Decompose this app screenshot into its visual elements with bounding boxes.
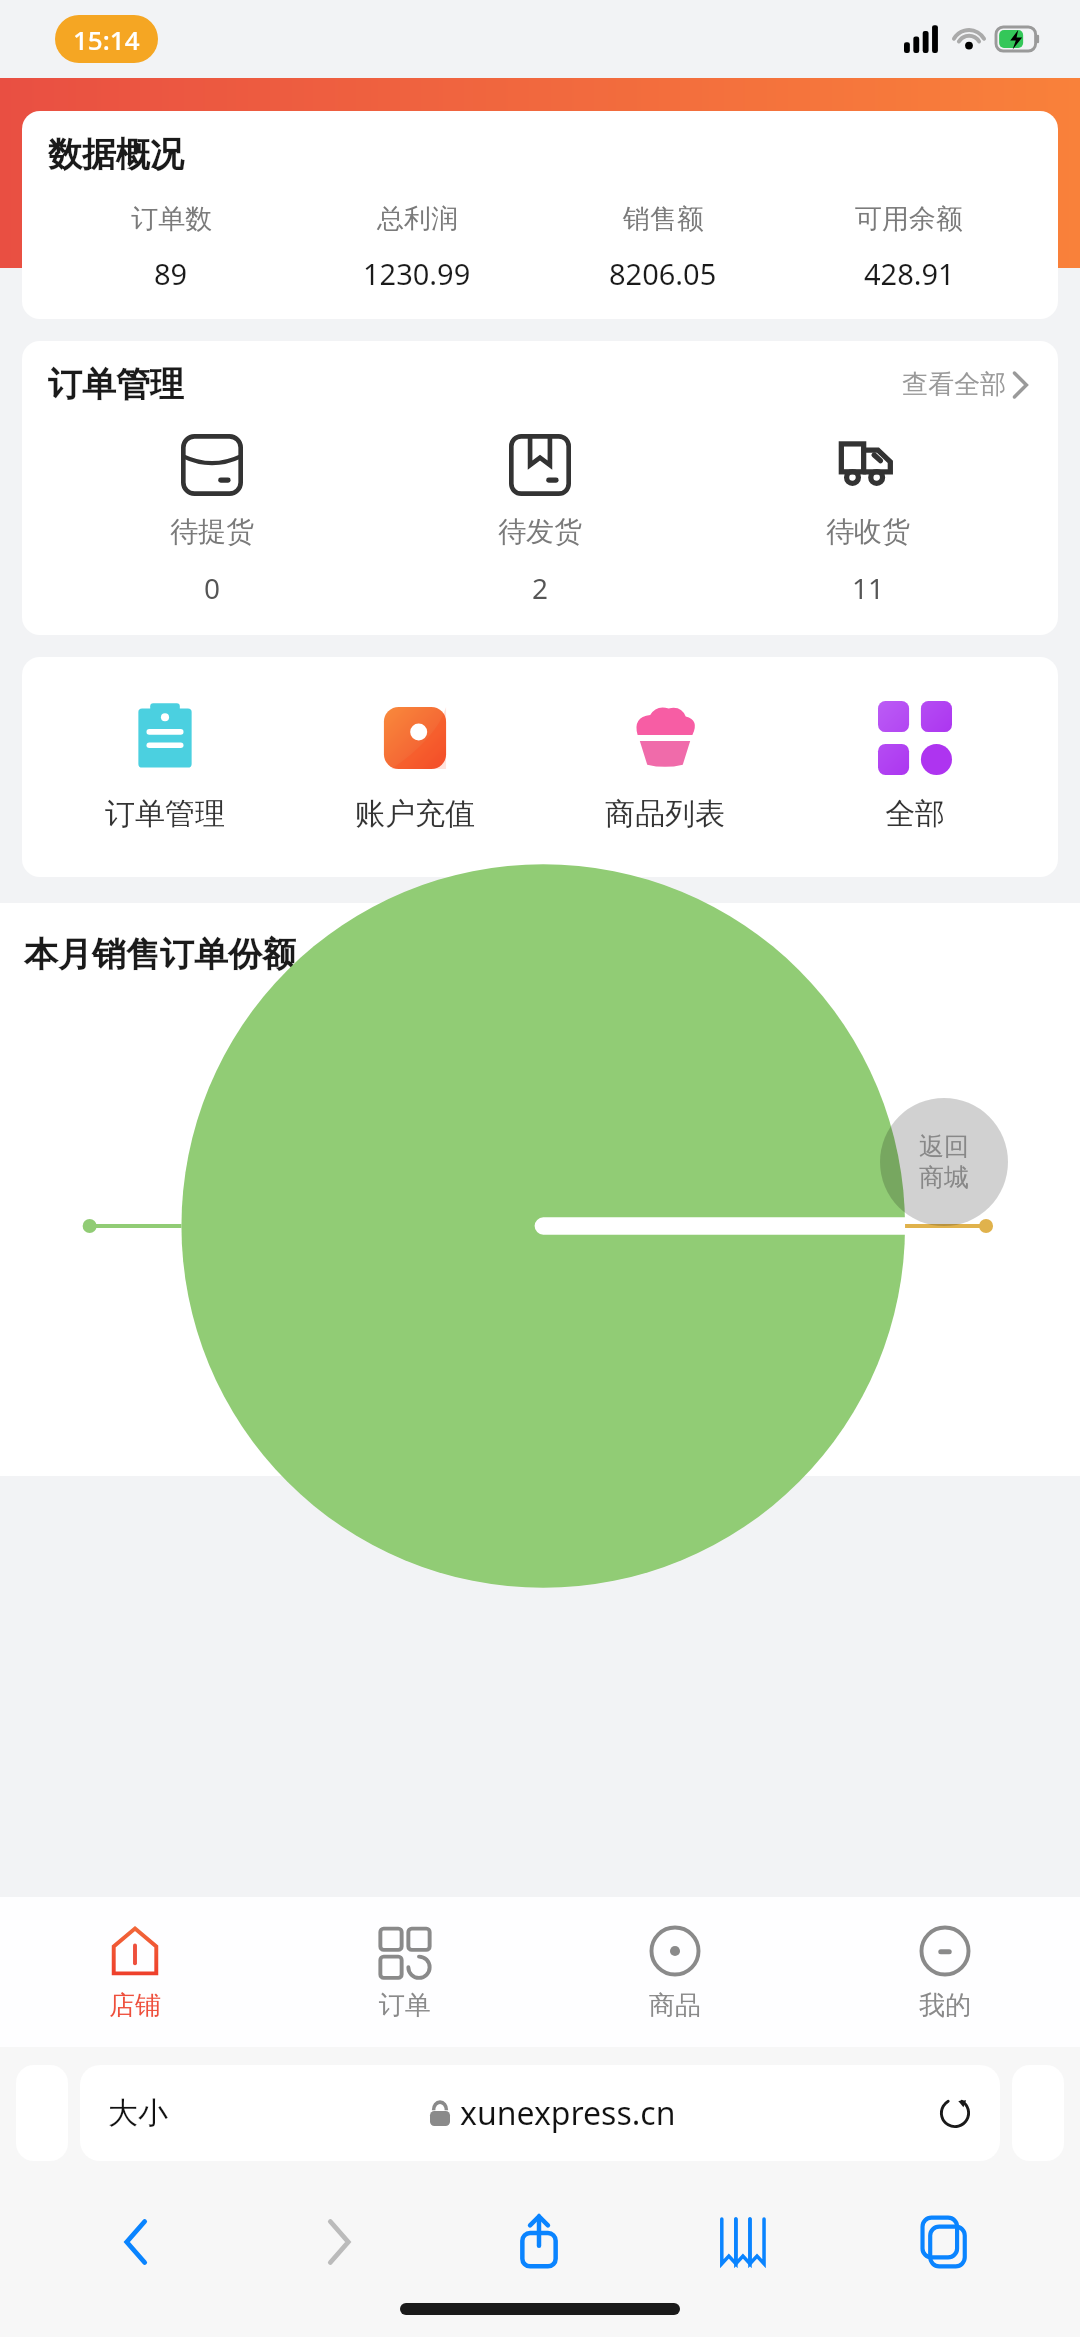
staticText: 2 — [532, 569, 549, 607]
button[interactable]: 订单管理 — [40, 697, 290, 837]
staticText: 待收货 — [826, 514, 910, 549]
staticText: 我的 — [919, 1989, 971, 2022]
staticText: 数据概况 — [48, 133, 184, 176]
staticText: 销售额 — [623, 202, 704, 236]
button[interactable]: 待收货 — [704, 430, 1032, 611]
button[interactable]: 店铺 — [0, 1897, 270, 2047]
button[interactable]: 待提货 — [48, 430, 376, 611]
staticText: 15:14 — [73, 22, 140, 57]
staticText: 订单 — [379, 1989, 431, 2022]
button[interactable]: Forward — [237, 2197, 438, 2287]
button[interactable]: 商品 — [540, 1897, 810, 2047]
button[interactable]: Tabs — [842, 2197, 1044, 2287]
other: Reload — [938, 2096, 972, 2130]
button[interactable]: 返回 — [880, 1098, 1008, 1226]
staticText: xunexpress.cn — [460, 2091, 676, 2135]
staticText: 全部 — [885, 795, 945, 833]
button[interactable]: 查看全部 — [898, 364, 1032, 405]
staticText: 查看全部 — [902, 368, 1006, 401]
staticText: 订单管理 — [48, 363, 184, 406]
button[interactable]: 全部 — [790, 697, 1040, 837]
staticText: 商品 — [649, 1989, 701, 2022]
staticText: 8206.05 — [609, 254, 717, 293]
staticText: 商城 — [919, 1162, 969, 1193]
button[interactable]: 待发货 — [376, 430, 704, 611]
button[interactable]: 商品列表 — [540, 697, 790, 837]
button[interactable]: Share — [438, 2197, 640, 2287]
staticText: 订单数 — [131, 202, 212, 236]
staticText: 本月销售订单份额 — [24, 933, 296, 976]
staticText: 待提货 — [170, 514, 254, 549]
staticText: 428.91 — [864, 254, 955, 293]
staticText: 0 — [204, 569, 221, 607]
staticText: 11 — [852, 569, 885, 607]
staticText: 账户充值 — [355, 795, 475, 833]
button[interactable]: 大小 — [80, 2065, 1000, 2161]
staticText: 订单管理 — [105, 795, 225, 833]
staticText: 1230.99 — [363, 254, 471, 293]
button[interactable]: 账户充值 — [290, 697, 540, 837]
staticText: 总利润 — [377, 202, 458, 236]
button[interactable]: 订单 — [270, 1897, 540, 2047]
button[interactable]: Back — [36, 2197, 237, 2287]
staticText: 店铺 — [109, 1989, 161, 2022]
button[interactable]: Bookmarks — [640, 2197, 842, 2287]
staticText: 大小 — [108, 2094, 168, 2132]
staticText: 89 — [154, 254, 188, 293]
staticText: 待发货 — [498, 514, 582, 549]
staticText: 商品列表 — [605, 795, 725, 833]
staticText: 返回 — [919, 1131, 969, 1162]
staticText: 可用余额 — [855, 202, 963, 236]
button[interactable]: 我的 — [810, 1897, 1080, 2047]
